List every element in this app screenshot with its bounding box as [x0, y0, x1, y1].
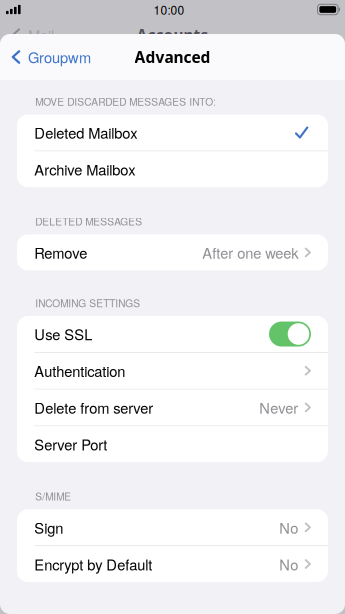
button[interactable]: Authentication [17, 353, 328, 389]
staticText: Sign [34, 517, 63, 538]
staticText: INCOMING SETTINGS [35, 295, 140, 310]
staticText: 10:00 [153, 1, 184, 18]
staticText: Mail [28, 24, 54, 45]
staticText: Deleted Mailbox [34, 122, 137, 143]
staticText: S/MIME [35, 489, 71, 503]
staticText: MOVE DISCARDED MESSAGES INTO: [35, 94, 216, 108]
button[interactable]: Sign [17, 509, 328, 545]
button[interactable]: Deleted Mailbox [17, 114, 328, 150]
staticText: No [279, 553, 298, 574]
button[interactable]: Encrypt by Default [17, 546, 328, 582]
staticText: Archive Mailbox [34, 159, 135, 180]
button[interactable]: Server Port [17, 426, 328, 462]
staticText: Remove [34, 242, 87, 263]
staticText: Accounts [136, 24, 208, 46]
staticText: Advanced [134, 46, 210, 68]
staticText: Use SSL [34, 323, 92, 344]
button[interactable]: Archive Mailbox [17, 151, 328, 187]
staticText: Delete from server [34, 397, 153, 418]
staticText: DELETED MESSAGES [35, 214, 142, 228]
button[interactable]: Delete from server [17, 389, 328, 425]
staticText: Encrypt by Default [34, 553, 152, 574]
staticText: No [279, 517, 298, 538]
button[interactable]: Remove [17, 234, 328, 270]
staticText: Groupwm [28, 46, 91, 67]
button[interactable]: Groupwm [0, 39, 97, 74]
button[interactable]: Use SSL [17, 316, 328, 352]
staticText: Never [259, 397, 298, 418]
staticText: Server Port [34, 434, 107, 455]
staticText: After one week [202, 242, 298, 263]
staticText: Authentication [34, 360, 125, 381]
